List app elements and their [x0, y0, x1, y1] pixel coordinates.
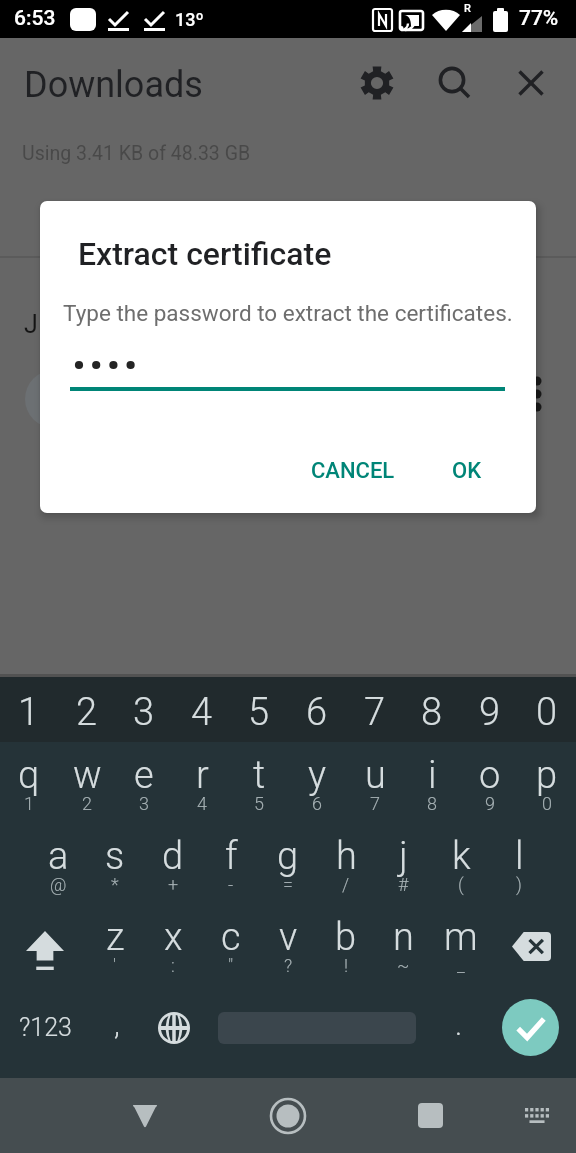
- button[interactable]: s: [86, 830, 144, 911]
- staticText: ): [516, 874, 522, 895]
- staticText: ?: [284, 955, 293, 976]
- staticText: 3: [133, 690, 155, 735]
- staticText: l: [515, 834, 524, 879]
- button[interactable]: g: [259, 830, 317, 911]
- button[interactable]: Switch keyboard: [501, 1078, 573, 1153]
- button[interactable]: Shift: [2, 911, 88, 992]
- button[interactable]: l: [490, 830, 548, 911]
- button[interactable]: e: [115, 749, 173, 830]
- staticText: z: [106, 915, 125, 960]
- staticText: .: [455, 1007, 463, 1042]
- button[interactable]: 0: [518, 677, 576, 742]
- staticText: 1: [24, 793, 34, 814]
- button[interactable]: y: [288, 749, 346, 830]
- button[interactable]: q: [0, 749, 58, 830]
- staticText: 8: [421, 690, 443, 735]
- staticText: 7: [370, 793, 380, 814]
- staticText: n: [393, 915, 414, 960]
- button[interactable]: Change language: [145, 992, 202, 1073]
- staticText: 6: [312, 793, 322, 814]
- staticText: 6:53: [14, 6, 56, 31]
- button[interactable]: c: [202, 911, 260, 992]
- button[interactable]: 3: [115, 677, 173, 742]
- button[interactable]: Backspace: [488, 911, 574, 992]
- button[interactable]: p: [518, 749, 576, 830]
- button[interactable]: Back: [109, 1078, 181, 1153]
- staticText: h: [336, 834, 357, 879]
- staticText: 9: [485, 793, 495, 814]
- button[interactable]: w: [58, 749, 116, 830]
- staticText: 5: [254, 793, 264, 814]
- button[interactable]: n: [374, 911, 432, 992]
- staticText: (: [458, 874, 464, 895]
- staticText: !: [344, 955, 349, 976]
- button[interactable]: z: [86, 911, 144, 992]
- button[interactable]: a: [29, 830, 87, 911]
- button[interactable]: Enter: [487, 992, 575, 1073]
- button[interactable]: b: [317, 911, 375, 992]
- button[interactable]: v: [259, 911, 317, 992]
- button[interactable]: m: [432, 911, 490, 992]
- button[interactable]: h: [317, 830, 375, 911]
- staticText: u: [365, 753, 386, 798]
- staticText: k: [452, 834, 471, 879]
- staticText: g: [277, 834, 299, 879]
- staticText: 2: [82, 793, 92, 814]
- button[interactable]: 9: [461, 677, 519, 742]
- button[interactable]: 1: [0, 677, 58, 742]
- staticText: c: [221, 915, 241, 960]
- button[interactable]: OK: [439, 443, 495, 499]
- staticText: ': [113, 955, 117, 976]
- staticText: Using 3.41 KB of 48.33 GB: [22, 142, 251, 165]
- staticText: b: [335, 915, 357, 960]
- staticText: 3: [139, 793, 149, 814]
- staticText: _: [457, 955, 465, 976]
- button[interactable]: CANCEL: [301, 443, 405, 499]
- button[interactable]: Home: [252, 1078, 324, 1153]
- button[interactable]: .: [430, 992, 487, 1073]
- staticText: i: [428, 753, 437, 798]
- staticText: Type the password to extract the certifi…: [63, 300, 513, 326]
- staticText: 8: [427, 793, 437, 814]
- button[interactable]: 2: [58, 677, 116, 742]
- staticText: t: [253, 753, 266, 798]
- staticText: 0: [536, 690, 558, 735]
- button[interactable]: 7: [346, 677, 404, 742]
- button[interactable]: ,: [88, 992, 145, 1073]
- staticText: j: [399, 834, 408, 879]
- button[interactable]: i: [403, 749, 461, 830]
- button[interactable]: x: [144, 911, 202, 992]
- staticText: a: [48, 834, 69, 879]
- button[interactable]: Settings: [353, 59, 401, 107]
- button[interactable]: 5: [230, 677, 288, 742]
- staticText: 6: [306, 690, 328, 735]
- staticText: /: [342, 874, 350, 895]
- button[interactable]: 6: [288, 677, 346, 742]
- button[interactable]: t: [230, 749, 288, 830]
- staticText: 2: [76, 690, 98, 735]
- button[interactable]: k: [432, 830, 490, 911]
- button[interactable]: Close: [507, 59, 555, 107]
- button[interactable]: u: [346, 749, 404, 830]
- button[interactable]: Search: [431, 59, 479, 107]
- button[interactable]: 4: [173, 677, 231, 742]
- staticText: J: [24, 310, 38, 339]
- button[interactable]: j: [374, 830, 432, 911]
- button[interactable]: o: [461, 749, 519, 830]
- button[interactable]: Space: [202, 992, 430, 1073]
- staticText: s: [105, 834, 125, 879]
- staticText: ": [228, 955, 234, 976]
- staticText: p: [536, 753, 558, 798]
- staticText: CANCEL: [311, 458, 395, 484]
- staticText: o: [479, 753, 501, 798]
- button[interactable]: ?123: [2, 992, 88, 1073]
- button[interactable]: d: [144, 830, 202, 911]
- staticText: w: [73, 753, 102, 798]
- button[interactable]: f: [202, 830, 260, 911]
- staticText: #: [398, 874, 409, 895]
- staticText: q: [18, 753, 40, 798]
- button[interactable]: Recents: [394, 1078, 466, 1153]
- button[interactable]: 8: [403, 677, 461, 742]
- staticText: @: [50, 874, 67, 895]
- button[interactable]: r: [173, 749, 231, 830]
